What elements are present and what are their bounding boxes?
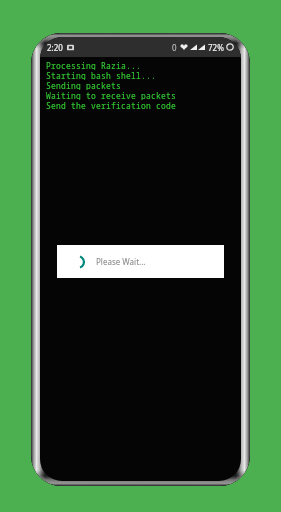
staticText: Starting bash shell... [46,70,156,80]
other: Loading [71,255,85,269]
staticText: Waiting to receive packets [46,90,176,100]
button[interactable]: Loading [57,245,224,278]
staticText: Send the verification code [46,100,176,110]
staticText: 72% [208,42,224,53]
staticText: 0 [172,42,177,53]
staticText: 2:20 [47,42,63,53]
staticText: Processing Razia... [46,60,141,70]
staticText: Sending packets [46,80,121,90]
staticText: Please Wait... [96,256,146,267]
